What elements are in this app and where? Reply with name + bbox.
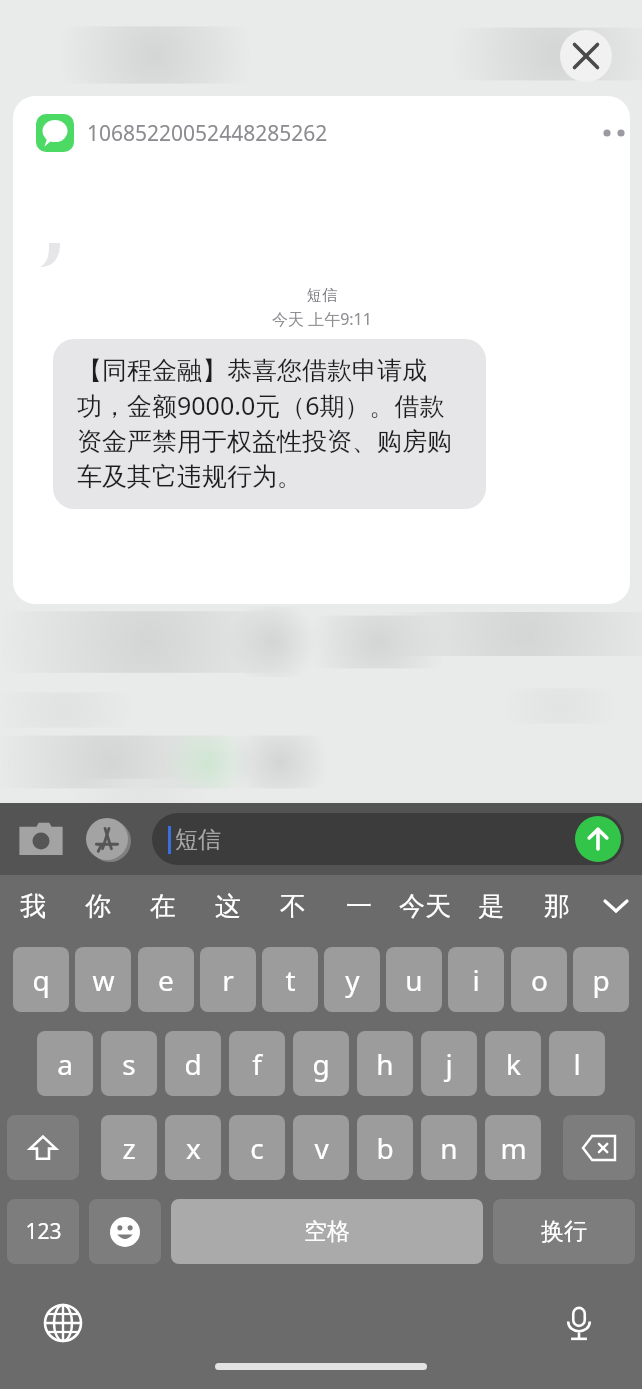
staticText: v bbox=[314, 1129, 329, 1167]
staticText: h bbox=[376, 1045, 394, 1083]
button[interactable]: Send bbox=[575, 816, 621, 862]
button[interactable]: f bbox=[229, 1031, 285, 1096]
button[interactable]: a bbox=[37, 1031, 93, 1096]
button[interactable]: 换行 bbox=[493, 1199, 635, 1264]
button[interactable]: Change keyboard bbox=[34, 1294, 92, 1352]
staticText: j bbox=[445, 1045, 453, 1083]
staticText: y bbox=[345, 961, 360, 999]
staticText: f bbox=[252, 1045, 262, 1083]
button[interactable]: v bbox=[293, 1115, 349, 1180]
staticText: 一 bbox=[346, 890, 372, 923]
button[interactable]: r bbox=[200, 947, 256, 1012]
staticText: m bbox=[500, 1129, 527, 1167]
button[interactable]: 你 bbox=[65, 875, 130, 937]
button[interactable]: y bbox=[324, 947, 380, 1012]
staticText: t bbox=[285, 961, 296, 999]
staticText: 今天 上午9:11 bbox=[272, 308, 372, 330]
staticText: 你 bbox=[85, 890, 111, 923]
staticText: 这 bbox=[215, 890, 241, 923]
button[interactable]: s bbox=[101, 1031, 157, 1096]
button[interactable]: 一 bbox=[326, 875, 392, 937]
button[interactable]: Hide suggestions bbox=[590, 875, 642, 937]
button[interactable]: 不 bbox=[260, 875, 326, 937]
button[interactable]: b bbox=[357, 1115, 413, 1180]
staticText: w bbox=[92, 961, 115, 999]
staticText: q bbox=[32, 961, 50, 999]
button[interactable]: z bbox=[101, 1115, 157, 1180]
button[interactable]: 我 bbox=[0, 875, 65, 937]
staticText: r bbox=[222, 961, 234, 999]
button[interactable]: m bbox=[485, 1115, 541, 1180]
button[interactable]: 这 bbox=[195, 875, 260, 937]
button[interactable]: App Store bbox=[84, 816, 130, 862]
staticText: p bbox=[592, 961, 610, 999]
button[interactable]: Emoji bbox=[89, 1199, 161, 1264]
button[interactable]: p bbox=[573, 947, 629, 1012]
staticText: 换行 bbox=[541, 1217, 587, 1246]
button[interactable]: o bbox=[511, 947, 567, 1012]
button[interactable]: g bbox=[293, 1031, 349, 1096]
button[interactable]: 短信 bbox=[152, 813, 624, 865]
button[interactable]: 今天 bbox=[392, 875, 458, 937]
button[interactable]: k bbox=[485, 1031, 541, 1096]
staticText: n bbox=[440, 1129, 458, 1167]
staticText: 我 bbox=[20, 890, 46, 923]
button[interactable]: l bbox=[549, 1031, 605, 1096]
button[interactable]: h bbox=[357, 1031, 413, 1096]
staticText: z bbox=[122, 1129, 136, 1167]
staticText: 123 bbox=[25, 1217, 62, 1246]
staticText: s bbox=[122, 1045, 136, 1083]
staticText: u bbox=[405, 961, 423, 999]
staticText: 是 bbox=[478, 890, 504, 923]
button[interactable]: Shift bbox=[7, 1115, 79, 1180]
staticText: g bbox=[312, 1045, 330, 1083]
button[interactable]: u bbox=[386, 947, 442, 1012]
button[interactable]: 那 bbox=[524, 875, 590, 937]
button[interactable]: 是 bbox=[458, 875, 524, 937]
button[interactable]: More options bbox=[595, 114, 630, 152]
button[interactable]: w bbox=[75, 947, 131, 1012]
button[interactable]: q bbox=[13, 947, 69, 1012]
button[interactable]: 10685220052448285262 bbox=[13, 96, 630, 604]
staticText: 今天 bbox=[399, 890, 451, 923]
button[interactable]: 123 bbox=[7, 1199, 79, 1264]
staticText: l bbox=[573, 1045, 581, 1083]
staticText: d bbox=[184, 1045, 202, 1083]
button[interactable]: j bbox=[421, 1031, 477, 1096]
staticText: 10685220052448285262 bbox=[87, 119, 328, 148]
staticText: a bbox=[57, 1045, 73, 1083]
staticText: 在 bbox=[150, 890, 176, 923]
staticText: x bbox=[186, 1129, 201, 1167]
staticText: 短信 bbox=[307, 286, 337, 305]
staticText: 不 bbox=[280, 890, 306, 923]
staticText: 【同程金融】恭喜您借款申请成功，金额9000.0元（6期）。借款资金严禁用于权益… bbox=[77, 355, 462, 493]
button[interactable]: x bbox=[165, 1115, 221, 1180]
button[interactable]: 在 bbox=[130, 875, 195, 937]
staticText: i bbox=[472, 961, 480, 999]
staticText: 空格 bbox=[304, 1217, 350, 1246]
button[interactable]: Camera bbox=[18, 816, 64, 862]
staticText: e bbox=[158, 961, 174, 999]
button[interactable]: Dictation bbox=[550, 1294, 608, 1352]
button[interactable]: i bbox=[448, 947, 504, 1012]
button[interactable]: Close bbox=[560, 30, 612, 82]
button[interactable]: n bbox=[421, 1115, 477, 1180]
button[interactable]: 空格 bbox=[171, 1199, 483, 1264]
button[interactable]: d bbox=[165, 1031, 221, 1096]
button[interactable]: t bbox=[262, 947, 318, 1012]
button[interactable]: c bbox=[229, 1115, 285, 1180]
staticText: 短信 bbox=[175, 825, 221, 854]
staticText: c bbox=[250, 1129, 264, 1167]
staticText: b bbox=[376, 1129, 394, 1167]
button[interactable]: e bbox=[138, 947, 194, 1012]
staticText: o bbox=[531, 961, 548, 999]
staticText: k bbox=[506, 1045, 521, 1083]
button[interactable]: Backspace bbox=[563, 1115, 635, 1180]
staticText: 那 bbox=[544, 890, 570, 923]
